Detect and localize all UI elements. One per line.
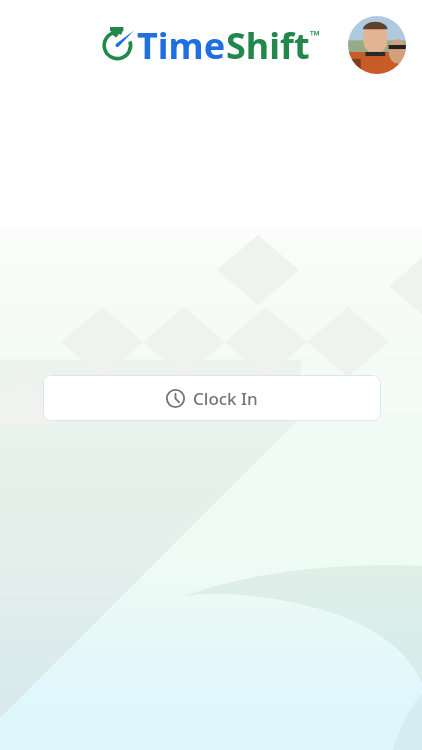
- staticText: ™: [310, 26, 321, 44]
- staticText: Clock In: [193, 387, 258, 410]
- button[interactable]: Profile: [348, 16, 406, 74]
- button[interactable]: Clock In: [43, 375, 381, 421]
- staticText: Time: [137, 21, 226, 70]
- staticText: Shift: [226, 21, 310, 70]
